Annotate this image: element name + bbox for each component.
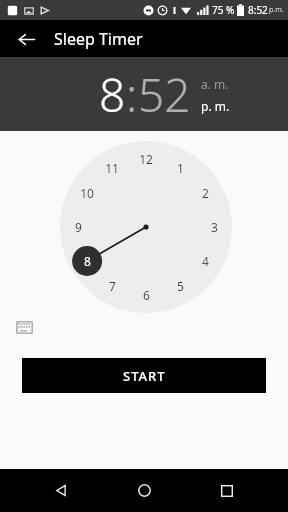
button[interactable]: 9 <box>66 218 90 236</box>
staticText: 8 <box>84 253 91 269</box>
button[interactable]: a. m. <box>201 75 229 93</box>
staticText: a. m. <box>201 76 229 92</box>
button[interactable]: 11 <box>100 159 124 177</box>
staticText: 5 <box>177 278 184 294</box>
staticText: 2 <box>202 185 209 201</box>
staticText: p.m. <box>269 5 284 15</box>
staticText: 7 <box>109 278 116 294</box>
button[interactable]: 10 <box>75 184 99 202</box>
button[interactable]: 8 <box>75 252 99 270</box>
staticText: 1 <box>177 160 184 176</box>
button[interactable]: Back <box>39 469 83 512</box>
button[interactable]: p. m. <box>201 97 230 115</box>
staticText: 6 <box>143 287 150 303</box>
staticText: 3 <box>211 219 218 235</box>
button[interactable]: 5 <box>168 277 192 295</box>
staticText: 11 <box>105 160 119 176</box>
button[interactable]: 1 <box>168 159 192 177</box>
staticText: 10 <box>80 185 94 201</box>
staticText: 8 <box>99 63 126 126</box>
button[interactable]: 52 <box>138 63 191 126</box>
staticText: 9 <box>75 219 82 235</box>
button[interactable]: Home <box>122 469 166 512</box>
button[interactable]: Back <box>8 21 44 57</box>
staticText: 12 <box>139 151 153 167</box>
button[interactable]: 2 <box>193 184 217 202</box>
button[interactable]: 12 <box>134 150 158 168</box>
button[interactable]: 8 <box>99 63 126 126</box>
button[interactable]: Recent apps <box>205 469 249 512</box>
button[interactable]: Switch to keyboard input <box>10 313 38 341</box>
button[interactable]: START <box>22 358 266 393</box>
staticText: : <box>126 63 138 126</box>
staticText: 52 <box>138 63 191 126</box>
staticText: 8:52 <box>248 3 268 17</box>
staticText: 75 % <box>212 3 235 17</box>
button[interactable]: 6 <box>134 286 158 304</box>
staticText: 4 <box>202 253 209 269</box>
button[interactable]: 4 <box>193 252 217 270</box>
staticText: p. m. <box>201 98 230 114</box>
button[interactable]: 7 <box>100 277 124 295</box>
staticText: START <box>123 367 166 385</box>
button[interactable]: 3 <box>202 218 226 236</box>
staticText: Sleep Timer <box>54 28 143 50</box>
